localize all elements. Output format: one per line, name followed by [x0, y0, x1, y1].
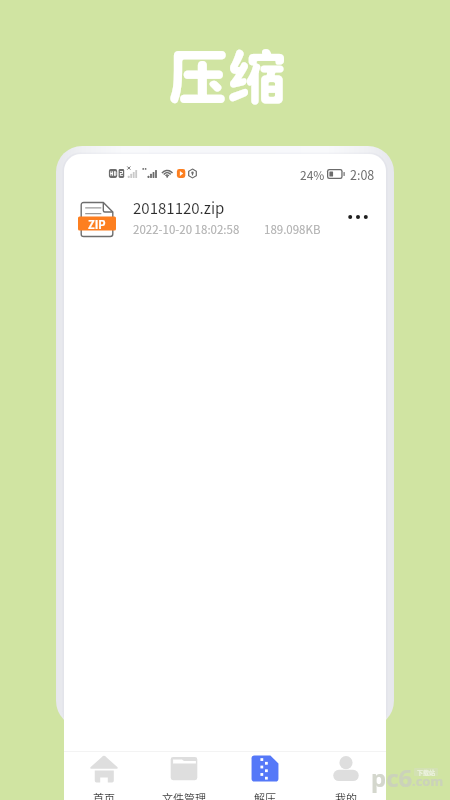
button[interactable]: More options: [340, 199, 376, 235]
staticText: ZIP: [88, 216, 106, 232]
staticText: 2022-10-20 18:02:58: [133, 221, 240, 238]
staticText: 24%: [300, 166, 325, 183]
button[interactable]: ZIP: [64, 186, 386, 248]
staticText: pc6: [371, 761, 413, 793]
staticText: 首页: [93, 790, 115, 800]
button[interactable]: 解压: [224, 752, 305, 800]
staticText: 下载站: [417, 768, 436, 776]
staticText: 2:08: [350, 165, 375, 183]
staticText: 文件管理: [162, 790, 206, 800]
button[interactable]: 我的: [305, 752, 386, 800]
button[interactable]: 文件管理: [144, 752, 224, 800]
staticText: 压缩: [168, 42, 287, 112]
staticText: 我的: [335, 790, 357, 800]
staticText: 189.098KB: [264, 221, 321, 238]
staticText: 20181120.zip: [133, 197, 225, 219]
staticText: 解压: [254, 790, 276, 800]
staticText: .com: [412, 772, 444, 790]
button[interactable]: 首页: [64, 752, 144, 800]
